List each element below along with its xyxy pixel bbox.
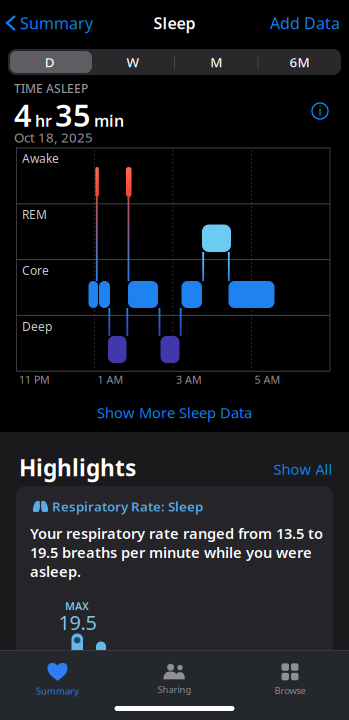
staticText: Summary [20,12,93,34]
staticText: Show More Sleep Data [97,403,252,422]
staticText: Core [22,262,49,278]
button[interactable]: Summary [7,12,93,34]
button[interactable]: Add Data [270,12,340,34]
staticText: Respiratory Rate: Sleep [52,497,203,515]
staticText: 6M [289,53,309,71]
staticText: 19.5 [58,609,96,636]
button[interactable]: Respiratory Rate: Sleep [16,486,333,720]
staticText: i [318,103,321,119]
staticText: 19.5 breaths per minute while you were [30,542,312,562]
staticText: 1 AM [97,372,123,387]
button[interactable]: W [91,49,174,75]
staticText: REM [22,206,47,222]
staticText: W [126,53,139,71]
staticText: M [210,53,222,71]
staticText: Sleep [153,12,195,34]
staticText: MAX [65,599,89,613]
button[interactable]: M [174,49,258,75]
staticText: Show All [273,459,332,479]
button[interactable]: Show All [273,459,332,479]
staticText: Summary [36,685,79,697]
staticText: D [45,53,55,71]
staticText: Awake [22,150,59,166]
staticText: 11 PM [19,372,50,387]
staticText: Deep [22,318,52,334]
button[interactable]: Summary [7,657,107,703]
staticText: 5 AM [254,372,280,387]
staticText: Your respiratory rate ranged from 13.5 t… [30,523,323,543]
staticText: min [94,110,124,131]
staticText: TIME ASLEEP [14,80,88,96]
button[interactable]: Browse [240,657,340,703]
staticText: Browse [274,684,305,697]
staticText: 35 [55,94,91,135]
button[interactable]: Sharing [124,657,224,703]
staticText: 3 AM [176,372,202,387]
staticText: 4 [14,94,32,135]
staticText: Add Data [270,12,340,34]
button[interactable]: Show More Sleep Data [97,403,252,422]
button[interactable]: 6M [258,49,341,75]
staticText: hr [35,110,52,131]
button[interactable]: D [8,49,91,75]
staticText: Sharing [157,683,191,696]
staticText: Highlights [19,452,136,483]
staticText: asleep. [30,561,81,581]
button[interactable]: About Time Asleep [312,103,328,119]
staticText: Oct 18, 2025 [14,128,93,146]
